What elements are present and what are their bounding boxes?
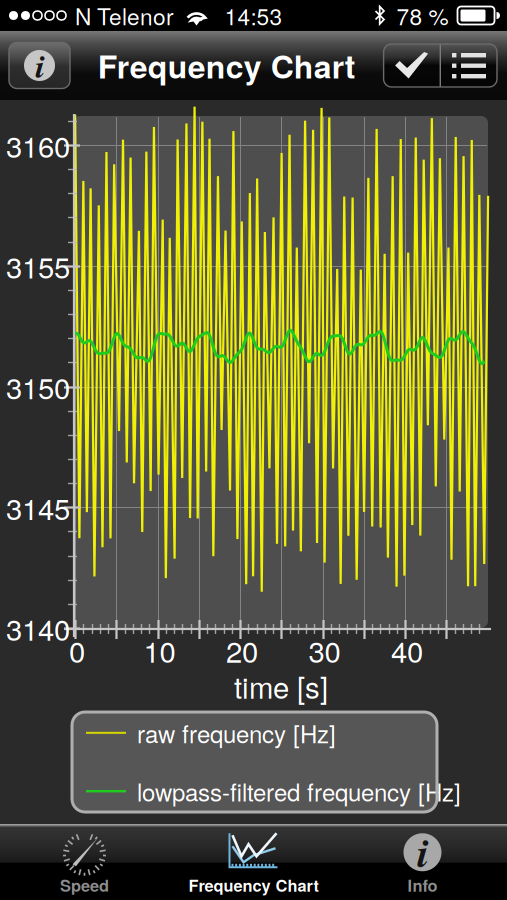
staticText: 30	[309, 629, 341, 671]
staticText: Speed	[60, 873, 109, 897]
staticText: Frequency Chart	[188, 873, 318, 897]
staticText: 20	[226, 629, 258, 671]
button[interactable]: Speed	[0, 824, 169, 900]
button[interactable]: Confirm	[384, 44, 440, 87]
staticText: Frequency Chart	[98, 43, 356, 88]
button[interactable]: List	[441, 44, 497, 87]
staticText: 10	[143, 629, 175, 671]
staticText: 3145	[6, 486, 70, 528]
button[interactable]: Info	[9, 42, 70, 88]
staticText: 0	[69, 629, 85, 671]
staticText: time [s]	[234, 665, 328, 707]
staticText: 40	[391, 629, 423, 671]
button[interactable]: i	[338, 824, 507, 900]
staticText: 3140	[6, 607, 70, 649]
staticText: 14:53	[224, 0, 282, 32]
staticText: N Telenor	[75, 0, 174, 32]
staticText: 3150	[6, 365, 70, 407]
staticText: i	[36, 41, 45, 89]
staticText: 78 %	[396, 0, 448, 32]
staticText: raw frequency [Hz]	[137, 716, 336, 750]
staticText: i	[417, 822, 429, 881]
button[interactable]: Frequency Chart	[169, 824, 338, 900]
staticText: lowpass-filtered frequency [Hz]	[137, 774, 461, 808]
staticText: Info	[407, 873, 437, 897]
staticText: 3160	[6, 124, 70, 166]
staticText: 3155	[6, 245, 70, 287]
